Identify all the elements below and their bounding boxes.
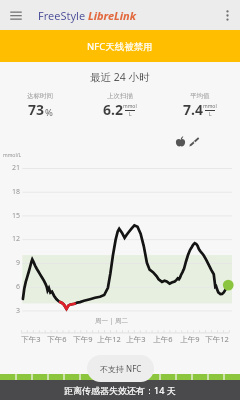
staticText: 上午9 <box>180 334 200 344</box>
staticText: 15 <box>11 211 20 221</box>
staticText: L <box>129 111 132 118</box>
button[interactable]: Menu <box>5 4 27 26</box>
staticText: 73 <box>28 100 45 119</box>
button[interactable]: NFC天线被禁用 <box>0 30 240 62</box>
staticText: 6 <box>15 282 20 292</box>
staticText: 最近 24 小时 <box>90 70 150 84</box>
staticText: 上午6 <box>153 334 173 344</box>
staticText: 下午12 <box>205 334 229 344</box>
button[interactable]: 距离传感器失效还有：14 天 <box>0 380 240 400</box>
button[interactable]: 不支持 NFC <box>87 355 154 382</box>
staticText: 3 <box>15 306 20 316</box>
staticText: 距离传感器失效还有：14 天 <box>64 384 176 396</box>
staticText: 上午3 <box>126 334 146 344</box>
staticText: 上次扫描 <box>107 92 133 100</box>
staticText: 21 <box>11 163 20 173</box>
button[interactable]: Add food note <box>175 136 186 147</box>
staticText: % <box>45 106 53 119</box>
button[interactable]: 上次扫描 <box>80 92 160 119</box>
staticText: 下午3 <box>21 334 41 344</box>
staticText: 18 <box>11 187 20 197</box>
button[interactable]: Add insulin note <box>188 136 199 147</box>
staticText: 达标时间 <box>27 92 53 100</box>
staticText: 下午6 <box>47 334 67 344</box>
staticText: 下午9 <box>73 334 93 344</box>
staticText: FreeStyle <box>38 8 88 23</box>
staticText: mmol <box>203 103 217 110</box>
staticText: LibreLink <box>88 8 136 23</box>
staticText: 不支持 NFC <box>100 363 142 374</box>
staticText: NFC天线被禁用 <box>87 40 153 53</box>
staticText: 周一 | 周二 <box>95 316 128 325</box>
staticText: mmol/L <box>3 152 22 159</box>
button[interactable]: More options <box>217 5 238 26</box>
staticText: 6.2 <box>103 100 123 119</box>
staticText: 12 <box>11 234 20 244</box>
staticText: mmol <box>123 103 137 110</box>
staticText: 9 <box>15 258 20 268</box>
staticText: L <box>209 111 212 118</box>
button[interactable]: 达标时间 <box>0 92 80 119</box>
button[interactable]: 平均值 <box>160 92 240 119</box>
staticText: 上午12 <box>97 334 121 344</box>
staticText: 平均值 <box>190 92 210 100</box>
staticText: 7.4 <box>183 100 203 119</box>
